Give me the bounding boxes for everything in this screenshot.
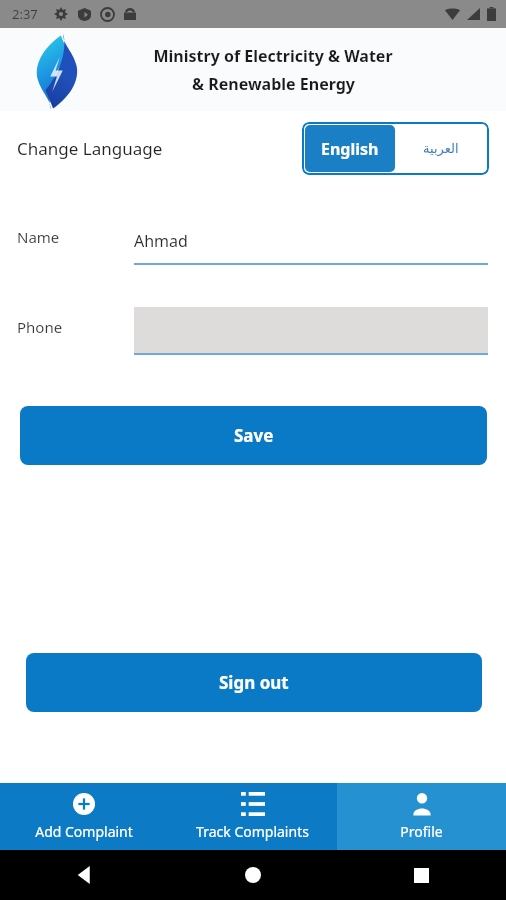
staticText: Phone xyxy=(17,317,63,337)
staticText: 2:37 xyxy=(12,5,38,23)
button[interactable]: Profile xyxy=(337,783,506,850)
staticText: Profile xyxy=(400,822,443,841)
staticText: & Renewable Energy xyxy=(192,73,355,95)
staticText: Ministry of Electricity & Water xyxy=(153,45,393,67)
button[interactable]: Save xyxy=(20,406,487,465)
button[interactable]: Home xyxy=(168,850,337,900)
button[interactable]: Back xyxy=(0,850,168,900)
button[interactable]: العربية xyxy=(395,125,486,172)
button[interactable]: Ahmad xyxy=(134,230,488,265)
button[interactable]: Add Complaint xyxy=(0,783,168,850)
button[interactable]: Recent apps xyxy=(337,850,506,900)
staticText: Sign out xyxy=(219,671,289,694)
staticText: English xyxy=(321,138,379,160)
staticText: Add Complaint xyxy=(35,822,133,841)
button[interactable]: English xyxy=(305,125,395,172)
button[interactable]: Track Complaints xyxy=(168,783,337,850)
staticText: Name xyxy=(17,227,60,247)
staticText: Change Language xyxy=(17,137,163,160)
staticText: Track Complaints xyxy=(196,822,309,841)
button[interactable]: Sign out xyxy=(26,653,482,712)
staticText: Ahmad xyxy=(134,230,188,252)
button[interactable] xyxy=(134,307,488,355)
staticText: العربية xyxy=(423,141,459,156)
staticText: Save xyxy=(234,424,274,447)
